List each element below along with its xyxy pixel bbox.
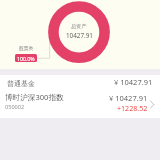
staticText: 050002 bbox=[5, 103, 25, 111]
staticText: +1228.52 bbox=[117, 103, 148, 113]
staticText: 100.0% bbox=[17, 55, 35, 62]
staticText: 总资产 bbox=[71, 23, 87, 29]
button[interactable]: 普通基金 bbox=[0, 75, 160, 90]
other: Open fund details bbox=[148, 100, 157, 109]
staticText: 股票类 bbox=[19, 45, 34, 51]
button[interactable]: 博时沪深300指数 bbox=[0, 90, 160, 117]
staticText: 10427.91 bbox=[66, 31, 93, 40]
staticText: ¥ 10427.91 bbox=[109, 93, 148, 103]
button[interactable]: 总资产 bbox=[0, 0, 160, 69]
staticText: 博时沪深300指数 bbox=[5, 92, 64, 102]
staticText: ¥ 10427.91 bbox=[114, 77, 153, 87]
staticText: 普通基金 bbox=[7, 79, 35, 88]
